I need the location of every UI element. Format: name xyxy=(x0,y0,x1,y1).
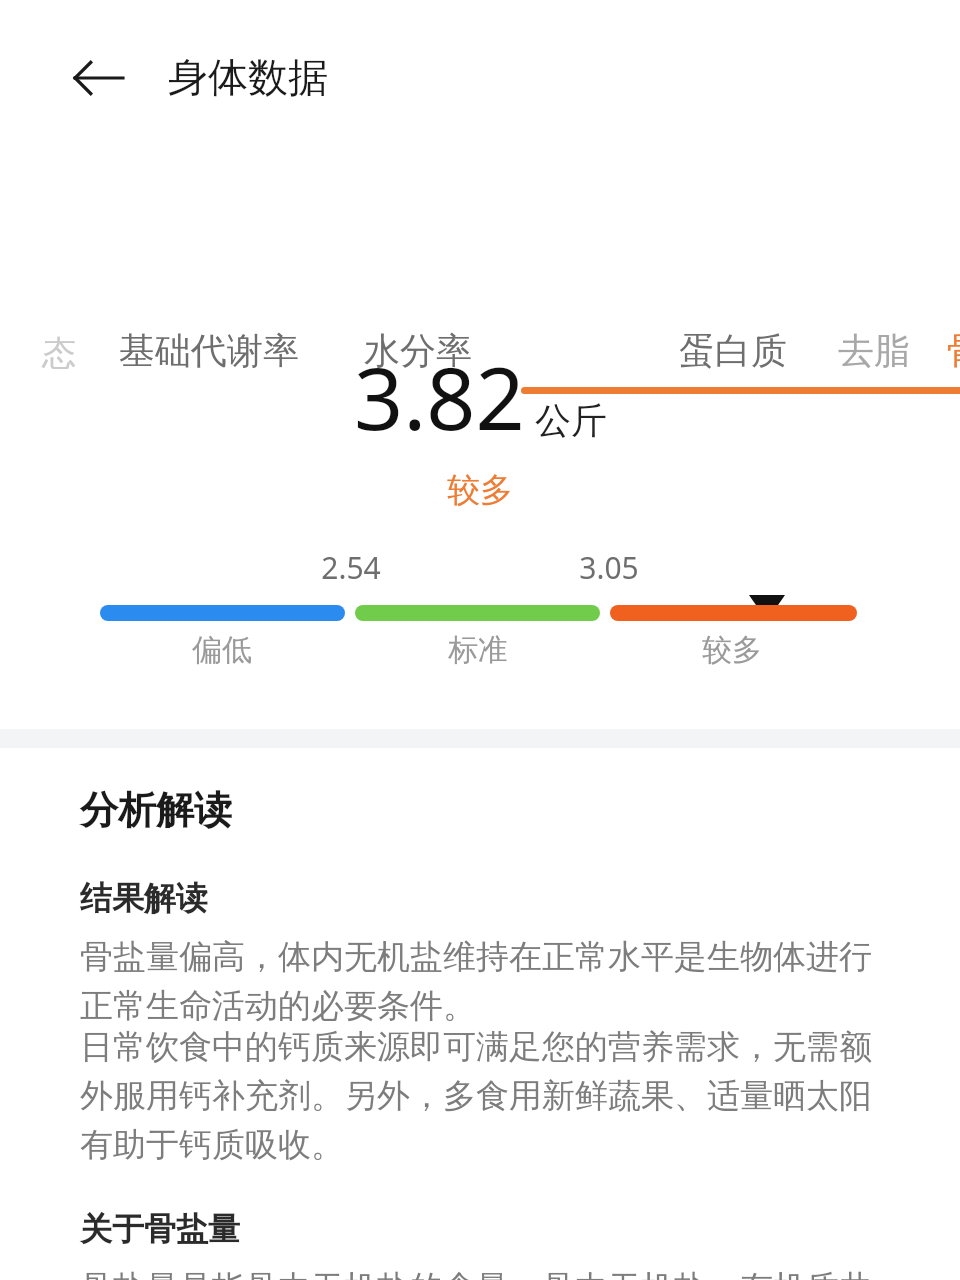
button[interactable]: Back xyxy=(62,42,134,114)
staticText: 较多 xyxy=(447,469,513,511)
staticText: 结果解读 xyxy=(80,878,208,918)
staticText: 标准 xyxy=(408,631,548,669)
staticText: 水分率 xyxy=(364,328,472,373)
staticText: 偏低 xyxy=(152,631,292,669)
button[interactable]: 态 xyxy=(42,318,76,389)
staticText: 去脂 xyxy=(838,328,910,373)
staticText: 3.82 xyxy=(354,338,525,455)
staticText: 日常饮食中的钙质来源即可满足您的营养需求，无需额外服用钙补充剂。另外，多食用新鲜… xyxy=(80,1026,902,1165)
button[interactable]: 去脂 xyxy=(838,314,910,387)
button[interactable]: 基础代谢率 xyxy=(119,314,299,387)
staticText: 基础代谢率 xyxy=(119,328,299,373)
staticText: 公斤 xyxy=(535,398,607,443)
staticText: 2.54 xyxy=(306,547,396,588)
staticText: 蛋白质 xyxy=(679,328,787,373)
staticText: 关于骨盐量 xyxy=(80,1209,240,1249)
staticText: 3.05 xyxy=(564,547,654,588)
staticText: 骨盐量 xyxy=(947,328,960,373)
staticText: 较多 xyxy=(662,631,802,669)
staticText: 身体数据 xyxy=(168,52,328,102)
staticText: 骨盐量是指骨中无机盐的含量，骨中无机盐，有机质共同构成骨骼。 xyxy=(80,1267,902,1280)
staticText: 骨盐量偏高，体内无机盐维持在正常水平是生物体进行正常生命活动的必要条件。 xyxy=(80,936,902,1026)
button[interactable]: 蛋白质 xyxy=(679,314,787,387)
button[interactable]: 骨盐量 xyxy=(521,314,960,408)
staticText: 态 xyxy=(42,332,76,375)
button[interactable]: 水分率 xyxy=(364,314,472,387)
staticText: 分析解读 xyxy=(80,786,232,834)
